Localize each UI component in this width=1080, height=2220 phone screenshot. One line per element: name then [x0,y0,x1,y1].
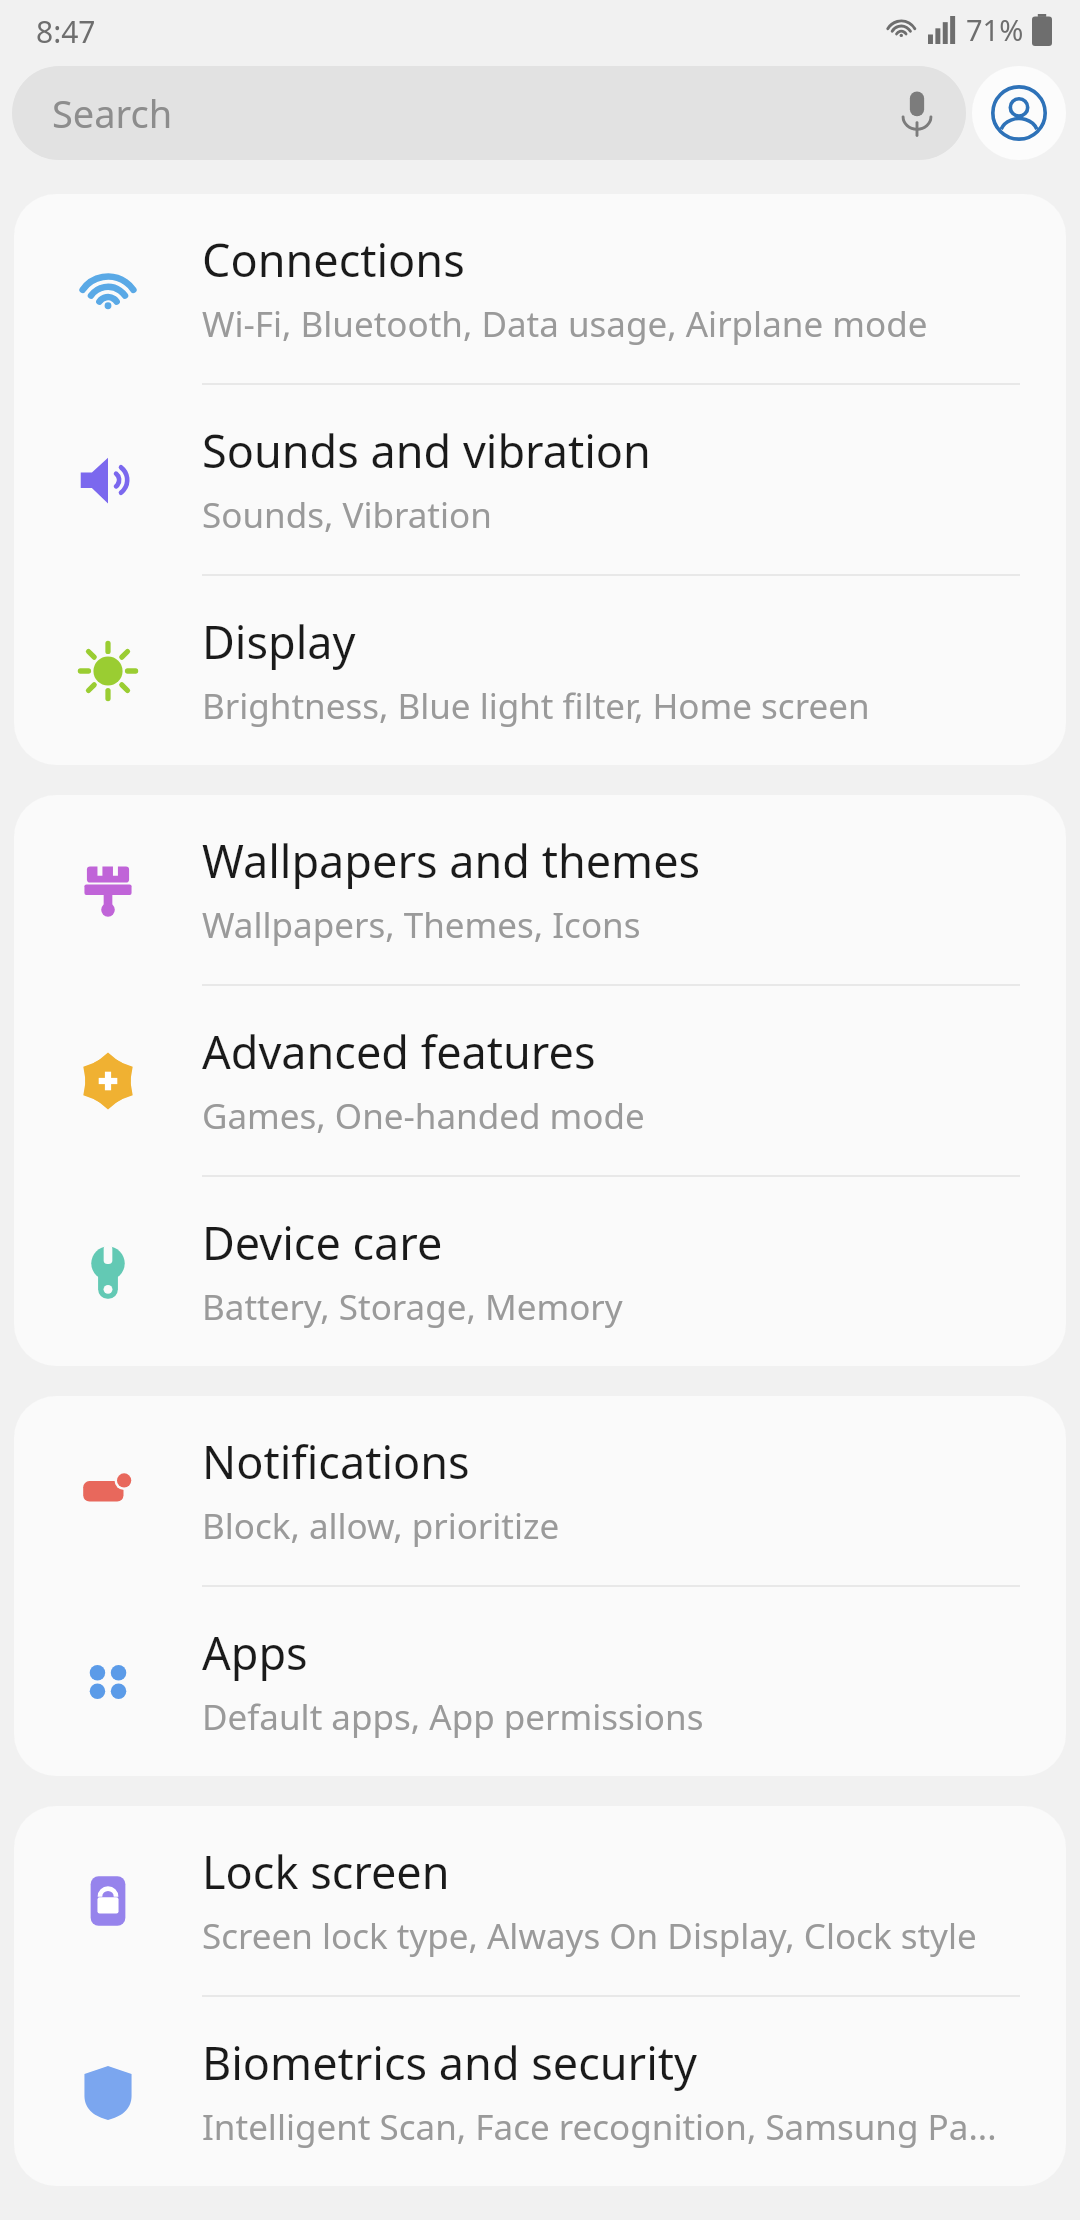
button[interactable]: Display [14,576,1066,765]
button[interactable]: Search [12,66,966,160]
staticText: 8:47 [36,11,96,52]
staticText: Screen lock type, Always On Display, Clo… [202,1912,977,1960]
staticText: Advanced features [202,1021,596,1082]
button[interactable]: Wallpapers and themes [14,795,1066,986]
button[interactable]: Apps [14,1587,1066,1776]
button[interactable]: Device care [14,1177,1066,1366]
button[interactable]: Connections [14,194,1066,385]
button[interactable]: Sounds and vibration [14,385,1066,576]
staticText: Device care [202,1212,443,1273]
staticText: 71% [966,10,1024,49]
staticText: Search [52,87,900,139]
staticText: Wallpapers and themes [202,830,701,891]
button[interactable]: Advanced features [14,986,1066,1177]
button[interactable]: Lock screen [14,1806,1066,1997]
staticText: Display [202,611,356,672]
staticText: Connections [202,229,465,290]
staticText: Lock screen [202,1841,450,1902]
staticText: Wi-Fi, Bluetooth, Data usage, Airplane m… [202,300,928,348]
staticText: Block, allow, prioritize [202,1502,560,1550]
staticText: Intelligent Scan, Face recognition, Sams… [202,2103,997,2151]
staticText: Apps [202,1622,308,1683]
staticText: Brightness, Blue light filter, Home scre… [202,682,870,730]
staticText: Sounds, Vibration [202,491,492,539]
staticText: Default apps, App permissions [202,1693,704,1741]
staticText: Wallpapers, Themes, Icons [202,901,641,949]
staticText: Battery, Storage, Memory [202,1283,623,1331]
button[interactable]: Notifications [14,1396,1066,1587]
button[interactable]: Account [972,66,1066,160]
staticText: Sounds and vibration [202,420,651,481]
staticText: Games, One-handed mode [202,1092,645,1140]
button[interactable]: Biometrics and security [14,1997,1066,2186]
staticText: Biometrics and security [202,2032,698,2093]
staticText: Notifications [202,1431,470,1492]
